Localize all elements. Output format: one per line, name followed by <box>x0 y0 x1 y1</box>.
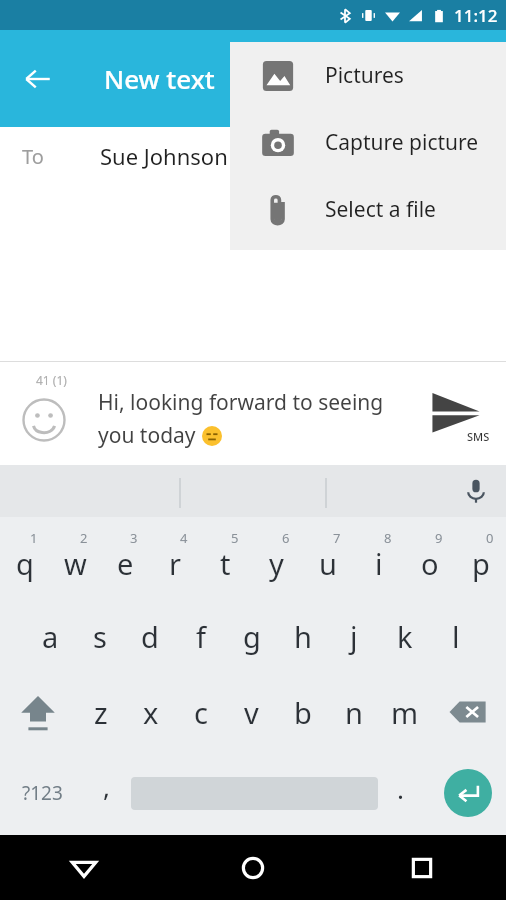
staticText: 41 (1) <box>36 372 67 388</box>
button[interactable]: 0 <box>455 517 506 599</box>
button[interactable]: Pictures <box>230 42 506 109</box>
button[interactable]: 7 <box>302 517 353 599</box>
staticText: SMS <box>467 429 490 444</box>
button[interactable]: b <box>277 673 328 751</box>
staticText: z <box>94 693 108 732</box>
staticText: d <box>141 617 159 656</box>
staticText: n <box>345 693 363 732</box>
staticText: c <box>194 693 208 732</box>
button[interactable]: Back <box>14 55 62 103</box>
staticText: 3 <box>130 529 138 547</box>
button[interactable]: 9 <box>404 517 455 599</box>
staticText: t <box>220 544 231 583</box>
staticText: o <box>421 544 439 583</box>
button[interactable]: n <box>328 673 379 751</box>
button[interactable]: Backspace <box>430 673 506 751</box>
button[interactable]: 5 <box>200 517 251 599</box>
button[interactable]: 4 <box>150 517 200 599</box>
staticText: w <box>64 544 87 583</box>
staticText: To <box>22 143 44 170</box>
button[interactable]: 1 <box>0 517 50 599</box>
button[interactable]: Shift <box>0 673 76 751</box>
staticText: 2 <box>80 529 88 547</box>
button[interactable]: Select a file <box>230 176 506 243</box>
staticText: 5 <box>231 529 239 547</box>
button[interactable]: f <box>175 599 226 673</box>
staticText: ?123 <box>22 780 63 806</box>
button[interactable]: g <box>226 599 277 673</box>
staticText: i <box>375 544 383 583</box>
staticText: Hi, looking forward to seeing <box>98 388 384 417</box>
button[interactable]: d <box>125 599 175 673</box>
button[interactable]: Emoji <box>14 390 74 450</box>
button[interactable]: ?123 <box>4 751 80 835</box>
button[interactable]: j <box>328 599 379 673</box>
staticText: 9 <box>435 529 443 547</box>
staticText: 1 <box>30 529 38 547</box>
button[interactable]: z <box>76 673 126 751</box>
staticText: j <box>350 617 358 656</box>
staticText: a <box>42 617 59 656</box>
button[interactable]: Enter <box>444 769 492 817</box>
button[interactable]: s <box>75 599 125 673</box>
staticText: 7 <box>333 529 341 547</box>
button[interactable]: Send SMS <box>420 378 492 450</box>
button[interactable]: 8 <box>353 517 404 599</box>
staticText: h <box>294 617 312 656</box>
staticText: p <box>472 544 490 583</box>
button[interactable]: k <box>379 599 430 673</box>
button[interactable]: v <box>226 673 277 751</box>
staticText: x <box>143 693 159 732</box>
button[interactable]: 3 <box>100 517 150 599</box>
staticText: g <box>243 617 261 656</box>
staticText: k <box>397 617 413 656</box>
button[interactable]: Home <box>168 835 337 900</box>
staticText: 4 <box>180 529 188 547</box>
staticText: Capture picture <box>325 128 479 157</box>
button[interactable]: , <box>82 751 130 835</box>
staticText: b <box>294 693 312 732</box>
staticText: l <box>452 617 460 656</box>
staticText: v <box>244 693 259 732</box>
staticText: , <box>103 769 110 804</box>
button[interactable]: 2 <box>50 517 100 599</box>
button[interactable]: a <box>25 599 75 673</box>
staticText: s <box>93 617 107 656</box>
staticText: 11:12 <box>454 4 498 27</box>
staticText: f <box>196 617 206 656</box>
staticText: New text <box>104 61 215 96</box>
button[interactable]: Recent apps <box>337 835 506 900</box>
staticText: u <box>319 544 337 583</box>
staticText: 0 <box>486 529 494 547</box>
staticText: y <box>269 544 284 583</box>
staticText: Select a file <box>325 195 436 224</box>
staticText: q <box>16 544 34 583</box>
button[interactable]: h <box>277 599 328 673</box>
staticText: r <box>169 544 181 583</box>
button[interactable]: x <box>126 673 176 751</box>
button[interactable]: l <box>430 599 481 673</box>
button[interactable]: . <box>380 751 420 835</box>
staticText: e <box>117 544 134 583</box>
button[interactable]: m <box>379 673 430 751</box>
staticText: you today <box>98 421 202 450</box>
staticText: m <box>391 693 419 732</box>
button[interactable]: Voice input <box>454 469 498 513</box>
button[interactable]: Capture picture <box>230 109 506 176</box>
staticText: Sue Johnson <box>100 141 228 171</box>
staticText: . <box>397 771 404 806</box>
button[interactable]: 6 <box>251 517 302 599</box>
staticText: Pictures <box>325 61 404 90</box>
staticText: 8 <box>384 529 392 547</box>
staticText: 6 <box>282 529 290 547</box>
button[interactable]: Back <box>0 835 168 900</box>
button[interactable]: c <box>176 673 226 751</box>
